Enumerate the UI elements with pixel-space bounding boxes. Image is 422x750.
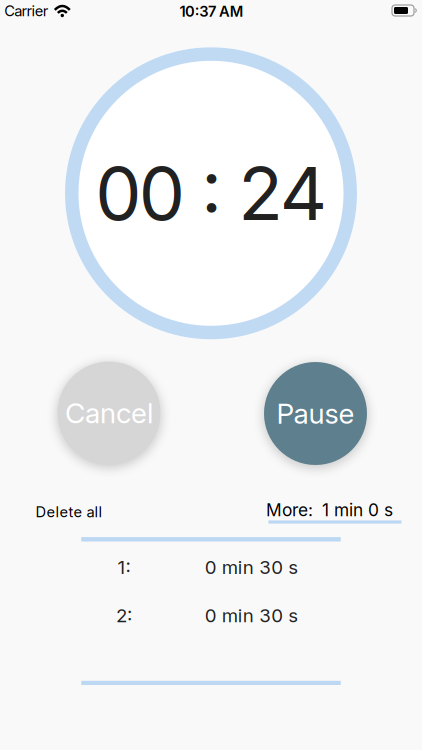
staticText: 0 min bbox=[205, 556, 254, 578]
button[interactable]: More: bbox=[266, 500, 393, 520]
button[interactable]: Pause bbox=[264, 362, 367, 465]
staticText: Carrier bbox=[4, 2, 49, 20]
staticText: 30 s bbox=[259, 604, 298, 626]
staticText: 1 min 0 s bbox=[322, 500, 393, 520]
button[interactable]: Cancel bbox=[57, 361, 160, 464]
staticText: Pause bbox=[276, 397, 354, 430]
staticText: 10:37 AM bbox=[179, 3, 244, 20]
staticText: Cancel bbox=[65, 396, 153, 429]
staticText: 30 s bbox=[259, 556, 298, 578]
staticText: 1: bbox=[117, 556, 130, 578]
staticText: 0 min bbox=[205, 604, 254, 626]
staticText: 00 : 24 bbox=[95, 150, 327, 236]
staticText: Delete all bbox=[35, 503, 102, 520]
staticText: More: bbox=[266, 500, 313, 520]
button[interactable]: Delete all bbox=[35, 503, 102, 520]
staticText: 2: bbox=[116, 604, 132, 626]
